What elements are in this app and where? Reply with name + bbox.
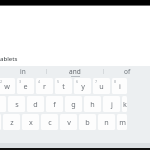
staticText: b: [85, 117, 90, 127]
staticText: n: [104, 117, 109, 127]
button[interactable]: j: [103, 96, 120, 112]
staticText: v: [67, 117, 71, 127]
staticText: t: [62, 81, 65, 91]
staticText: k: [123, 99, 127, 109]
staticText: i: [119, 81, 121, 91]
staticText: d: [33, 99, 38, 109]
staticText: 8: [114, 79, 117, 84]
button[interactable]: ablets: [0, 55, 18, 63]
staticText: f: [53, 99, 56, 109]
staticText: 3: [19, 79, 22, 84]
staticText: h: [90, 99, 95, 109]
button[interactable]: of: [104, 66, 150, 77]
staticText: s: [15, 99, 19, 109]
button[interactable]: and: [47, 66, 103, 77]
button[interactable]: z: [3, 114, 20, 130]
button[interactable]: 2: [0, 78, 15, 94]
button[interactable]: d: [27, 96, 44, 112]
button[interactable]: f: [46, 96, 63, 112]
staticText: of: [124, 67, 131, 76]
button[interactable]: in: [0, 66, 46, 77]
staticText: m: [119, 117, 126, 127]
button[interactable]: 7: [93, 78, 110, 94]
button[interactable]: m: [117, 114, 127, 130]
staticText: r: [43, 81, 46, 91]
staticText: z: [10, 117, 14, 127]
staticText: ablets: [0, 55, 18, 63]
button[interactable]: 5: [55, 78, 72, 94]
staticText: in: [20, 67, 26, 76]
button[interactable]: c: [41, 114, 58, 130]
staticText: 6: [76, 79, 79, 84]
button[interactable]: v: [60, 114, 77, 130]
button[interactable]: h: [84, 96, 101, 112]
button[interactable]: b: [79, 114, 96, 130]
staticText: 7: [95, 79, 98, 84]
button[interactable]: g: [65, 96, 82, 112]
staticText: c: [48, 117, 52, 127]
button[interactable]: s: [8, 96, 25, 112]
button[interactable]: 4: [36, 78, 53, 94]
staticText: g: [71, 99, 76, 109]
staticText: e: [23, 81, 28, 91]
button[interactable]: k: [122, 96, 127, 112]
staticText: 5: [57, 79, 60, 84]
staticText: j: [111, 99, 113, 109]
staticText: 2: [0, 79, 3, 84]
button[interactable]: x: [22, 114, 39, 130]
button[interactable]: 8: [112, 78, 127, 94]
staticText: 4: [38, 79, 41, 84]
staticText: and: [69, 67, 81, 76]
staticText: u: [99, 81, 104, 91]
button[interactable]: 3: [17, 78, 34, 94]
staticText: w: [4, 81, 10, 91]
button[interactable]: n: [98, 114, 115, 130]
button[interactable]: 6: [74, 78, 91, 94]
staticText: y: [81, 81, 85, 91]
staticText: x: [29, 117, 33, 127]
